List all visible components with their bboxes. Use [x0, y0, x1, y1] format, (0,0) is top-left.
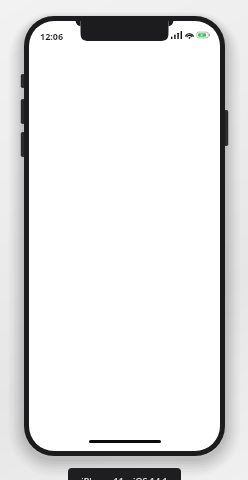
- staticText: 12:06: [40, 30, 64, 42]
- button[interactable]: 12:06: [29, 21, 220, 451]
- staticText: iPhone 11 – iOS 14.1: [81, 475, 168, 480]
- button[interactable]: Home indicator: [89, 440, 161, 443]
- button[interactable]: iPhone 11 – iOS 14.1: [68, 468, 181, 480]
